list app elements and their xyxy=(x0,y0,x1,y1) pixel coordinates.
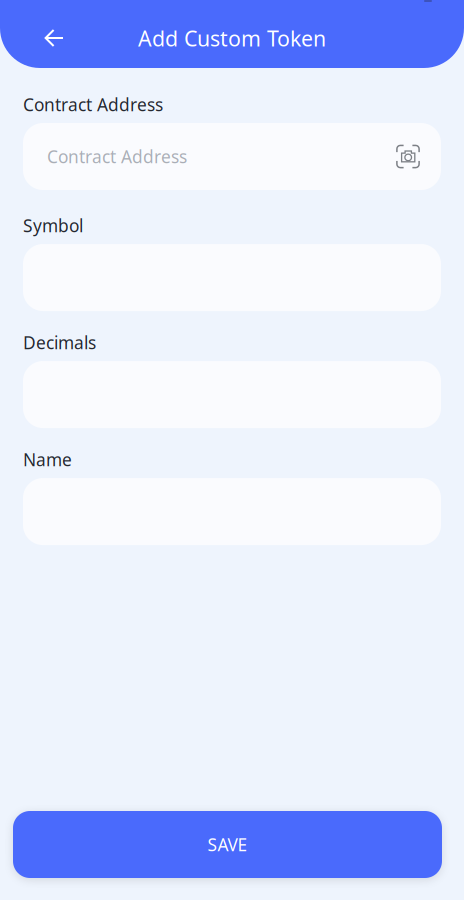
staticText: Name xyxy=(23,448,72,471)
staticText: Contract Address xyxy=(47,145,187,168)
staticText: Contract Address xyxy=(23,93,163,116)
button[interactable]: SAVE xyxy=(13,811,442,878)
staticText: SAVE xyxy=(207,833,247,856)
staticText: Decimals xyxy=(23,331,96,354)
staticText: Add Custom Token xyxy=(138,24,326,52)
staticText: Symbol xyxy=(23,214,83,237)
button[interactable]: Scan QR code xyxy=(388,136,428,176)
button[interactable]: Back xyxy=(32,16,76,60)
